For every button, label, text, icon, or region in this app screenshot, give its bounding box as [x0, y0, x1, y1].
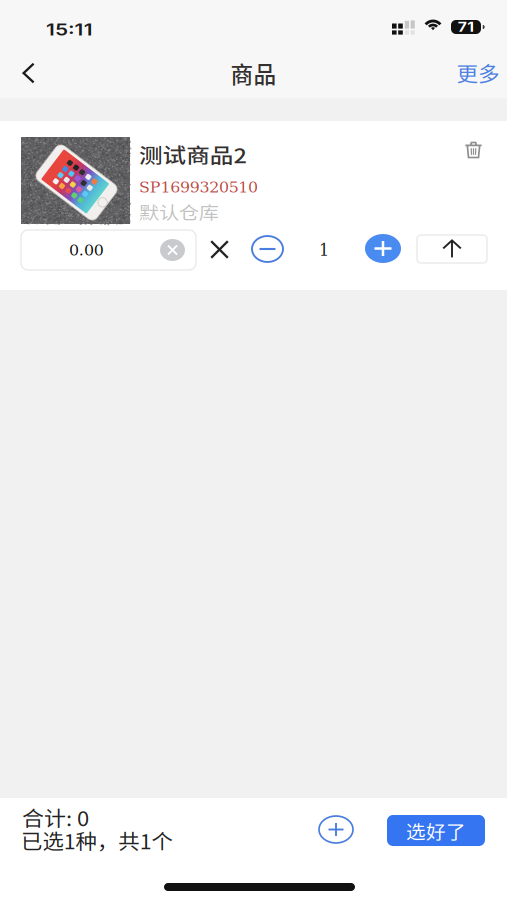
button[interactable]: 展开 [417, 235, 487, 263]
staticText: 测试商品2 [139, 140, 230, 169]
button[interactable]: 更多 [438, 44, 507, 101]
staticText: 默认仓库 [139, 199, 207, 224]
button[interactable]: 清除 [160, 239, 185, 261]
staticText: 0.00 [69, 242, 101, 259]
button[interactable]: 增加 [365, 234, 401, 263]
button[interactable]: 删除 [457, 133, 490, 167]
button[interactable]: 选好了 [387, 815, 485, 846]
button[interactable]: 添加 [318, 815, 354, 844]
staticText: 已选1种，共1个 [21, 826, 163, 855]
staticText: 71 [459, 19, 473, 35]
staticText: 15:11 [46, 20, 82, 39]
staticText: 1 [319, 241, 329, 260]
staticText: 商品 [230, 57, 276, 89]
staticText: 选好了 [407, 817, 464, 844]
button[interactable]: 返回 [0, 48, 55, 97]
staticText: SP1699320510 [139, 179, 249, 196]
staticText: 更多 [458, 58, 498, 87]
staticText: 合计: 0 [22, 803, 83, 832]
button[interactable]: 减少 [251, 235, 284, 263]
